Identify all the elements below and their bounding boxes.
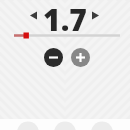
button[interactable]: Decrease bbox=[44, 48, 63, 67]
staticText: 1.7 bbox=[43, 0, 87, 31]
button[interactable]: Increase bbox=[71, 48, 90, 67]
button[interactable]: Next bbox=[90, 10, 100, 21]
button[interactable]: Previous bbox=[29, 10, 39, 21]
button[interactable]: 1.7 bbox=[41, 0, 89, 31]
button[interactable]: Value slider bbox=[10, 28, 122, 43]
